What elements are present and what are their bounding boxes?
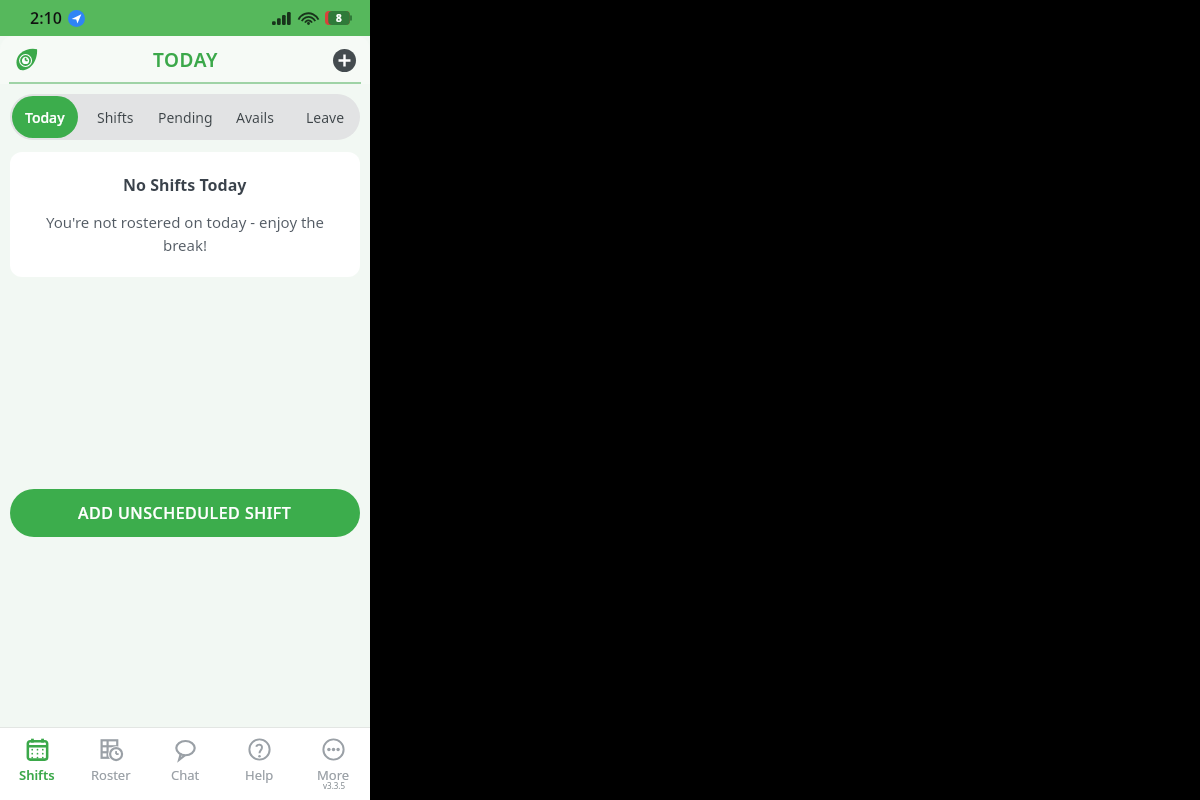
button[interactable]: ADD UNSCHEDULED SHIFT	[10, 489, 360, 537]
staticText: 2:10	[30, 7, 62, 29]
button[interactable]: Leave	[292, 96, 358, 138]
staticText: Shifts	[97, 108, 134, 127]
staticText: Leave	[306, 108, 345, 127]
staticText: 8	[336, 11, 342, 25]
staticText: Roster	[91, 766, 131, 784]
button[interactable]: Help	[222, 728, 296, 800]
button[interactable]: Avails	[222, 96, 288, 138]
button[interactable]: Roster	[74, 728, 148, 800]
button[interactable]: More	[296, 728, 370, 800]
staticText: Today	[25, 108, 65, 127]
button[interactable]: Shifts	[82, 96, 148, 138]
staticText: ADD UNSCHEDULED SHIFT	[78, 502, 292, 524]
button[interactable]: No Shifts Today	[10, 152, 360, 277]
staticText: TODAY	[153, 47, 218, 73]
button[interactable]: Pending	[152, 96, 218, 138]
staticText: Help	[245, 766, 274, 784]
staticText: Avails	[236, 108, 274, 127]
staticText: No Shifts Today	[123, 174, 247, 196]
button[interactable]: Chat	[148, 728, 222, 800]
button[interactable]: Today	[12, 96, 78, 138]
staticText: You're not rostered on today - enjoy the…	[32, 212, 338, 255]
button[interactable]: Add	[328, 44, 360, 76]
button[interactable]: Shifts	[0, 728, 74, 800]
staticText: More	[317, 766, 350, 784]
staticText: v3.3.5	[323, 780, 346, 791]
staticText: Chat	[171, 766, 200, 784]
staticText: Shifts	[19, 766, 55, 784]
staticText: Pending	[158, 108, 213, 127]
button[interactable]: Tanda logo	[10, 43, 44, 77]
